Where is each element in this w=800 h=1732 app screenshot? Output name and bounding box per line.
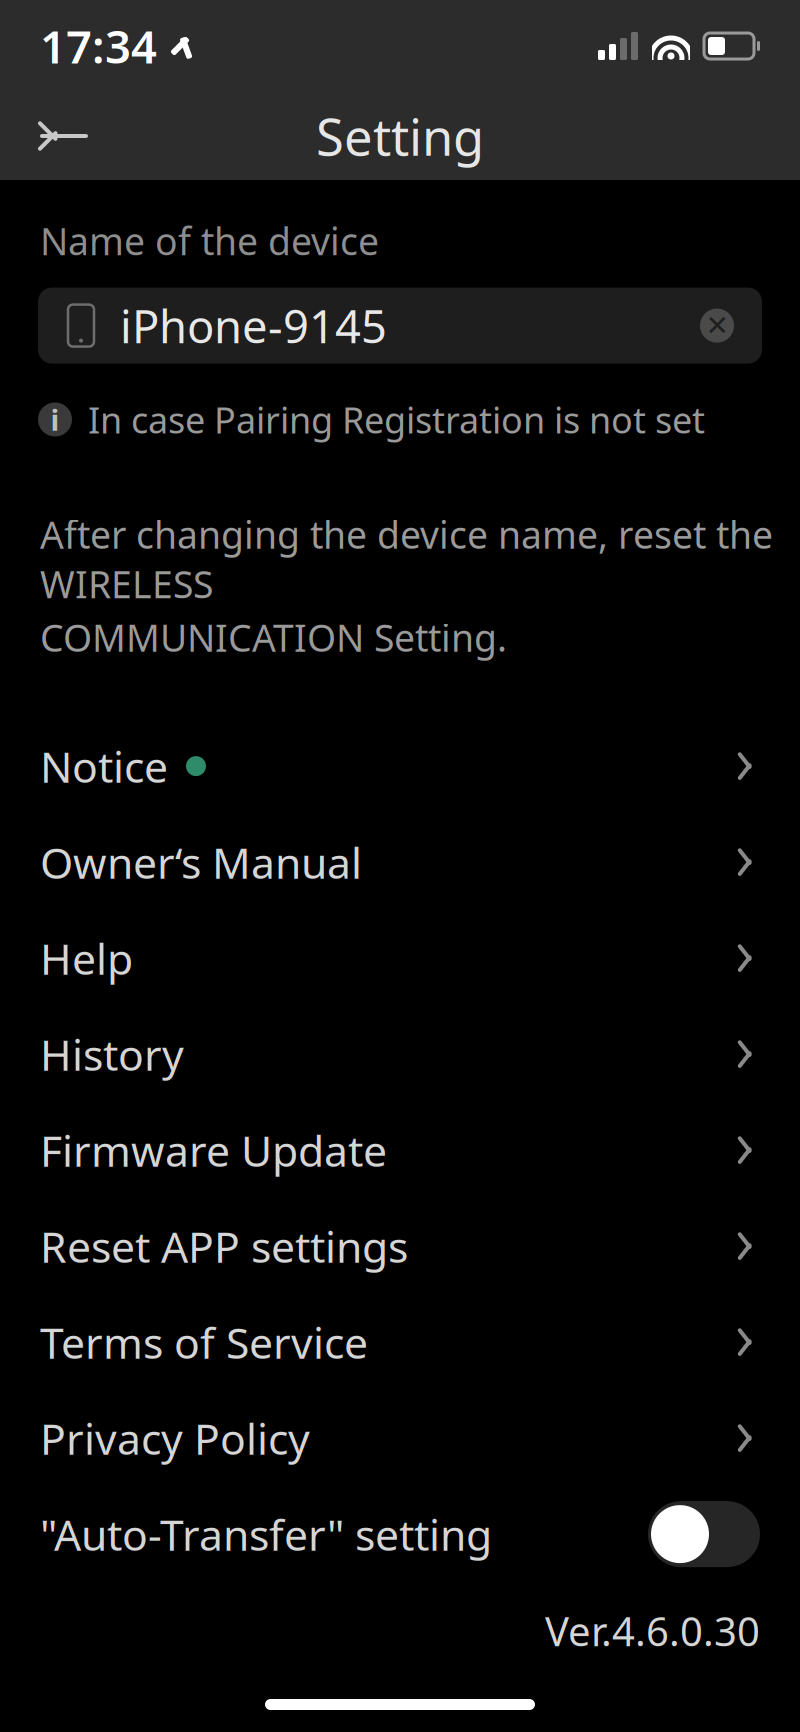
staticText: Reset APP settings bbox=[40, 1218, 408, 1274]
staticText: Terms of Service bbox=[40, 1314, 368, 1370]
button[interactable]: Clear device name bbox=[682, 291, 752, 361]
staticText: In case Pairing Registration is not set bbox=[88, 396, 705, 443]
button[interactable]: Help bbox=[0, 910, 800, 1006]
staticText: After changing the device name, reset th… bbox=[40, 509, 773, 609]
button[interactable]: Owner‘s Manual bbox=[0, 814, 800, 910]
button[interactable]: Reset APP settings bbox=[0, 1198, 800, 1294]
button[interactable]: Notice bbox=[0, 718, 800, 814]
button[interactable]: History bbox=[0, 1006, 800, 1102]
staticText: Privacy Policy bbox=[40, 1410, 310, 1466]
staticText: "Auto-Transfer" setting bbox=[40, 1506, 492, 1562]
staticText: i bbox=[50, 400, 59, 439]
staticText: iPhone-9145 bbox=[120, 295, 387, 356]
staticText: Firmware Update bbox=[40, 1122, 387, 1178]
button[interactable]: Terms of Service bbox=[0, 1294, 800, 1390]
button[interactable]: Back bbox=[22, 94, 106, 178]
staticText: Notice bbox=[40, 738, 168, 794]
staticText: History bbox=[40, 1026, 184, 1082]
staticText: Ver.4.6.0.30 bbox=[545, 1604, 760, 1657]
staticText: ✕ bbox=[705, 310, 728, 341]
staticText: 17:34 bbox=[40, 16, 157, 76]
staticText: Owner‘s Manual bbox=[40, 834, 362, 890]
button[interactable]: Privacy Policy bbox=[0, 1390, 800, 1486]
staticText: Name of the device bbox=[40, 216, 379, 266]
button[interactable]: Firmware Update bbox=[0, 1102, 800, 1198]
staticText: Setting bbox=[316, 102, 484, 170]
staticText: COMMUNICATION Setting. bbox=[40, 612, 507, 662]
staticText: Help bbox=[40, 930, 133, 986]
button[interactable]: "Auto-Transfer" setting bbox=[0, 1486, 800, 1582]
